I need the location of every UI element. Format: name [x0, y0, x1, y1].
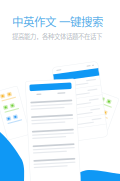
- staticText: 中英作文 一键搜索: [12, 13, 103, 30]
- staticText: 提高能力，各种文体话题不在话下: [12, 32, 102, 41]
